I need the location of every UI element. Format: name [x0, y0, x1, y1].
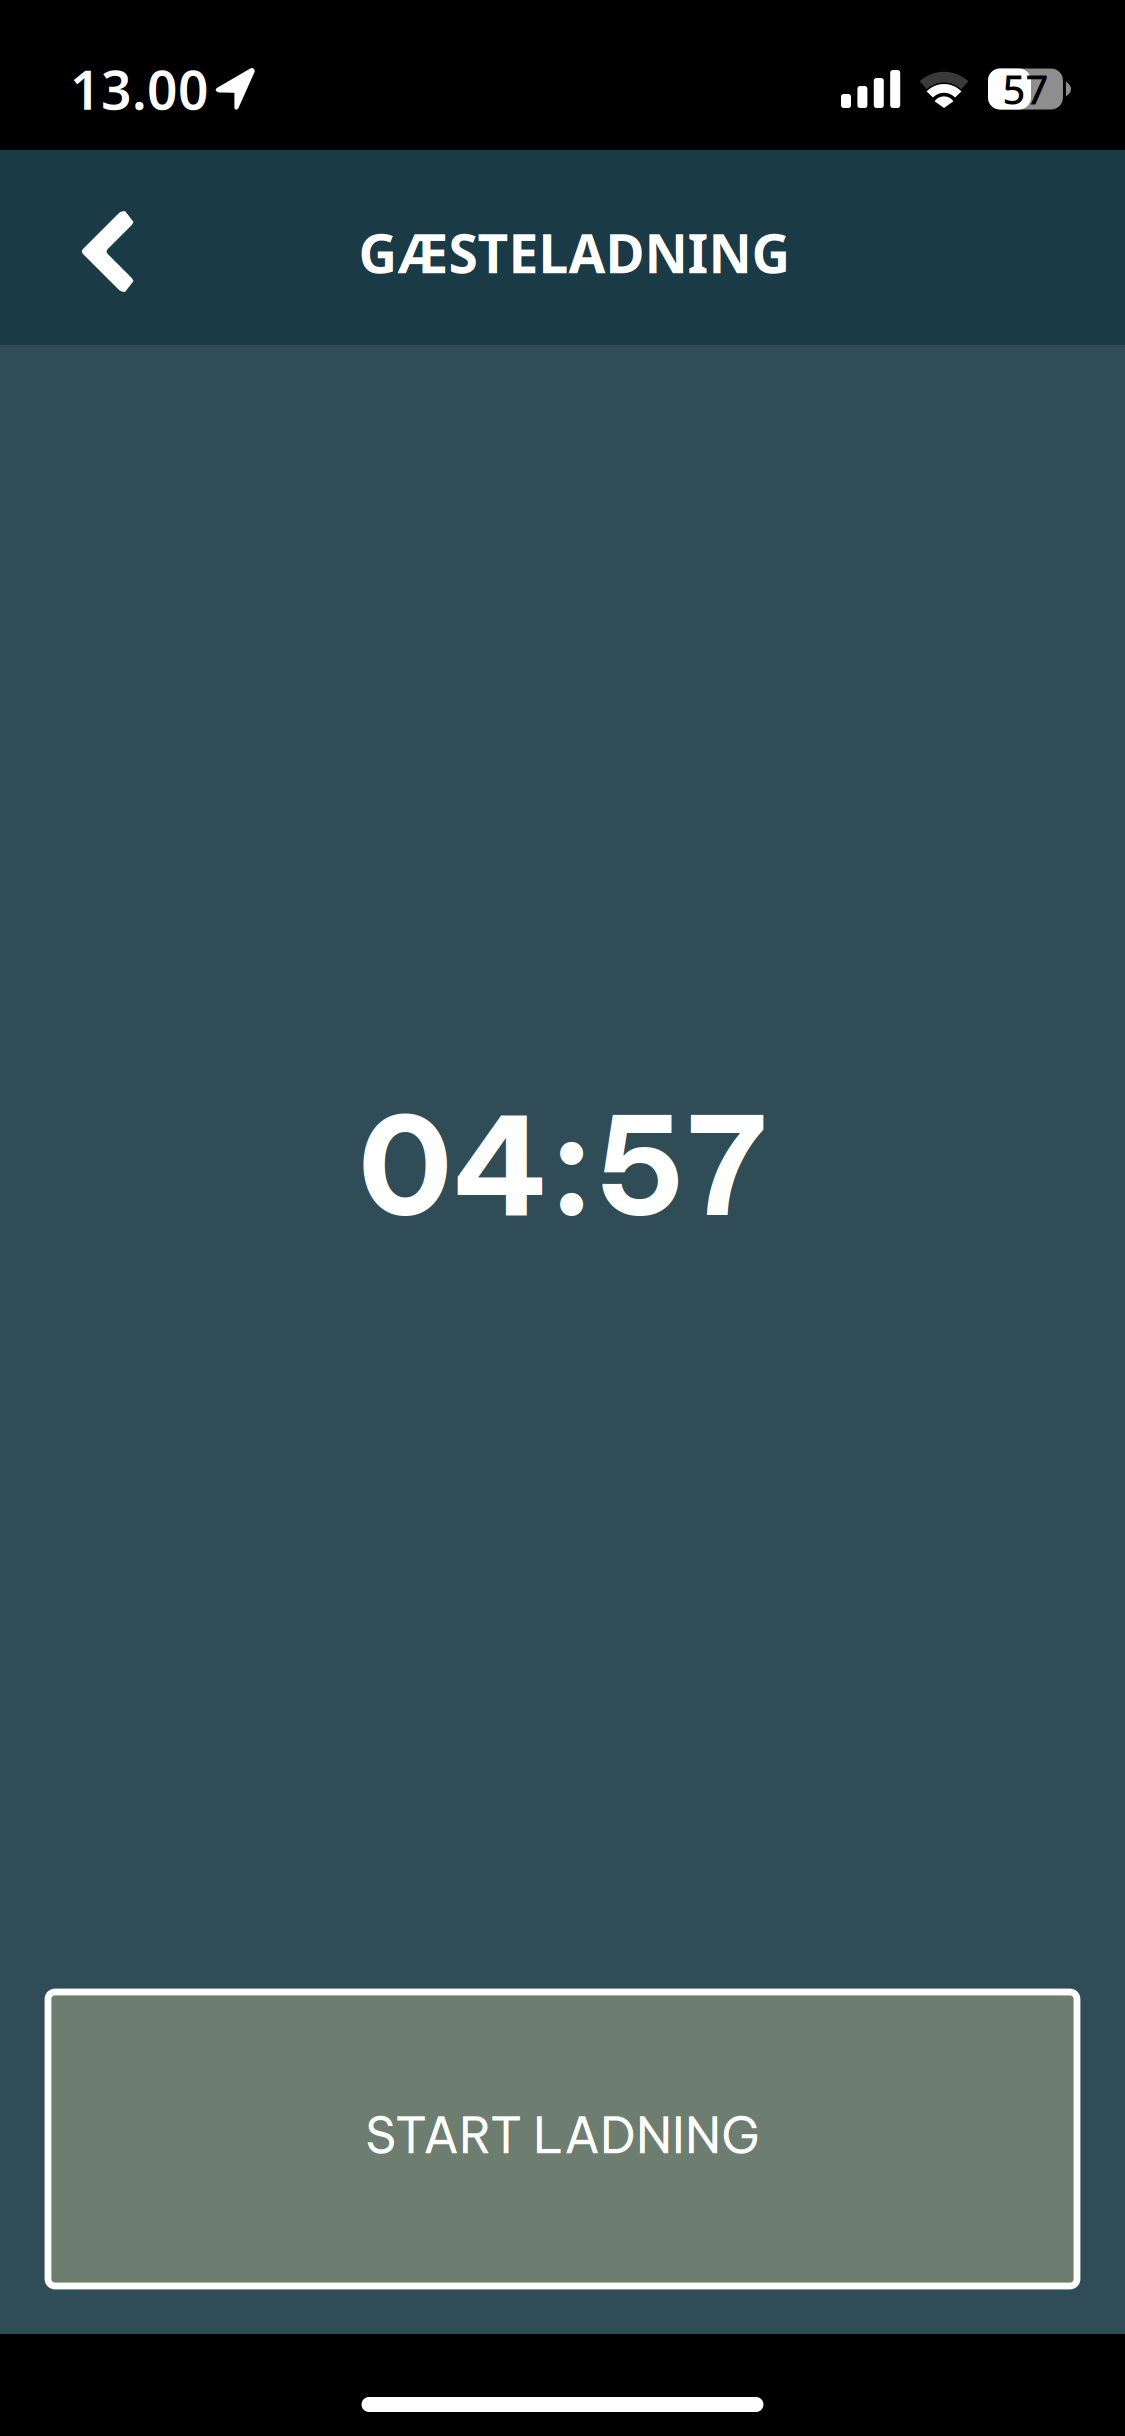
staticText: START LADNING — [365, 2104, 760, 2166]
button[interactable]: START LADNING — [48, 1992, 1077, 2286]
staticText: 04:57 — [358, 1080, 767, 1251]
staticText: GÆSTELADNING — [358, 216, 790, 289]
button[interactable]: Back — [27, 167, 187, 327]
staticText: 57 — [1002, 62, 1048, 116]
staticText: 13.00 — [70, 53, 209, 125]
